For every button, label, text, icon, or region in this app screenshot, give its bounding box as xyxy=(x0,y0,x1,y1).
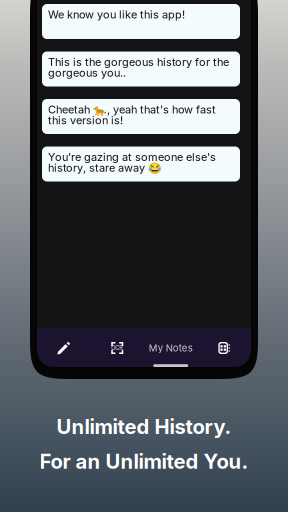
staticText: OCR xyxy=(111,345,123,351)
staticText: For an Unlimited You. xyxy=(39,449,248,473)
staticText: My Notes xyxy=(149,342,193,354)
staticText: You're gazing at someone else's history,… xyxy=(48,150,216,174)
button[interactable]: Compose note xyxy=(37,335,90,361)
button[interactable]: Scan text xyxy=(90,335,144,361)
button[interactable]: My Notes xyxy=(144,335,197,361)
staticText: This is the gorgeous history for the gor… xyxy=(48,55,229,79)
staticText: We know you like this app! xyxy=(48,8,185,21)
staticText: Unlimited History. xyxy=(56,414,231,439)
button[interactable]: My notebooks xyxy=(197,335,251,361)
staticText: Cheetah 🐆, yeah that's how fast this ver… xyxy=(48,103,216,127)
